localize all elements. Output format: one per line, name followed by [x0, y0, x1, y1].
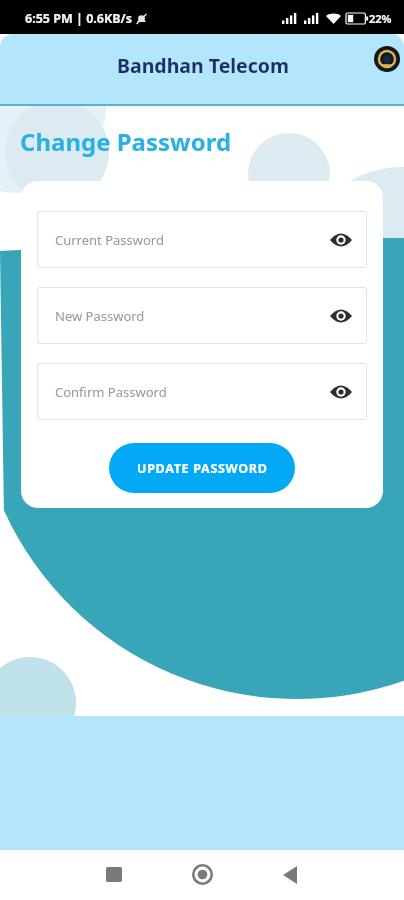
- button[interactable]: Current Password: [37, 211, 367, 268]
- button[interactable]: New Password: [37, 287, 367, 344]
- button[interactable]: Profile: [374, 46, 400, 72]
- staticText: New Password: [55, 307, 145, 325]
- button[interactable]: Confirm Password: [37, 363, 367, 420]
- staticText: Current Password: [55, 231, 164, 249]
- staticText: UPDATE PASSWORD: [137, 460, 268, 477]
- button[interactable]: Back: [269, 854, 310, 895]
- staticText: Bandhan Telecom: [117, 52, 289, 79]
- button[interactable]: UPDATE PASSWORD: [109, 443, 295, 493]
- button[interactable]: Show password: [327, 378, 355, 406]
- button[interactable]: Show password: [327, 302, 355, 330]
- staticText: Change Password: [20, 125, 232, 158]
- button[interactable]: Show password: [327, 226, 355, 254]
- button[interactable]: Home: [182, 854, 223, 895]
- staticText: 6:55 PM | 0.6KB/s: [25, 10, 133, 27]
- button[interactable]: Recents: [93, 854, 134, 895]
- staticText: 22%: [369, 11, 392, 26]
- staticText: Confirm Password: [55, 383, 167, 401]
